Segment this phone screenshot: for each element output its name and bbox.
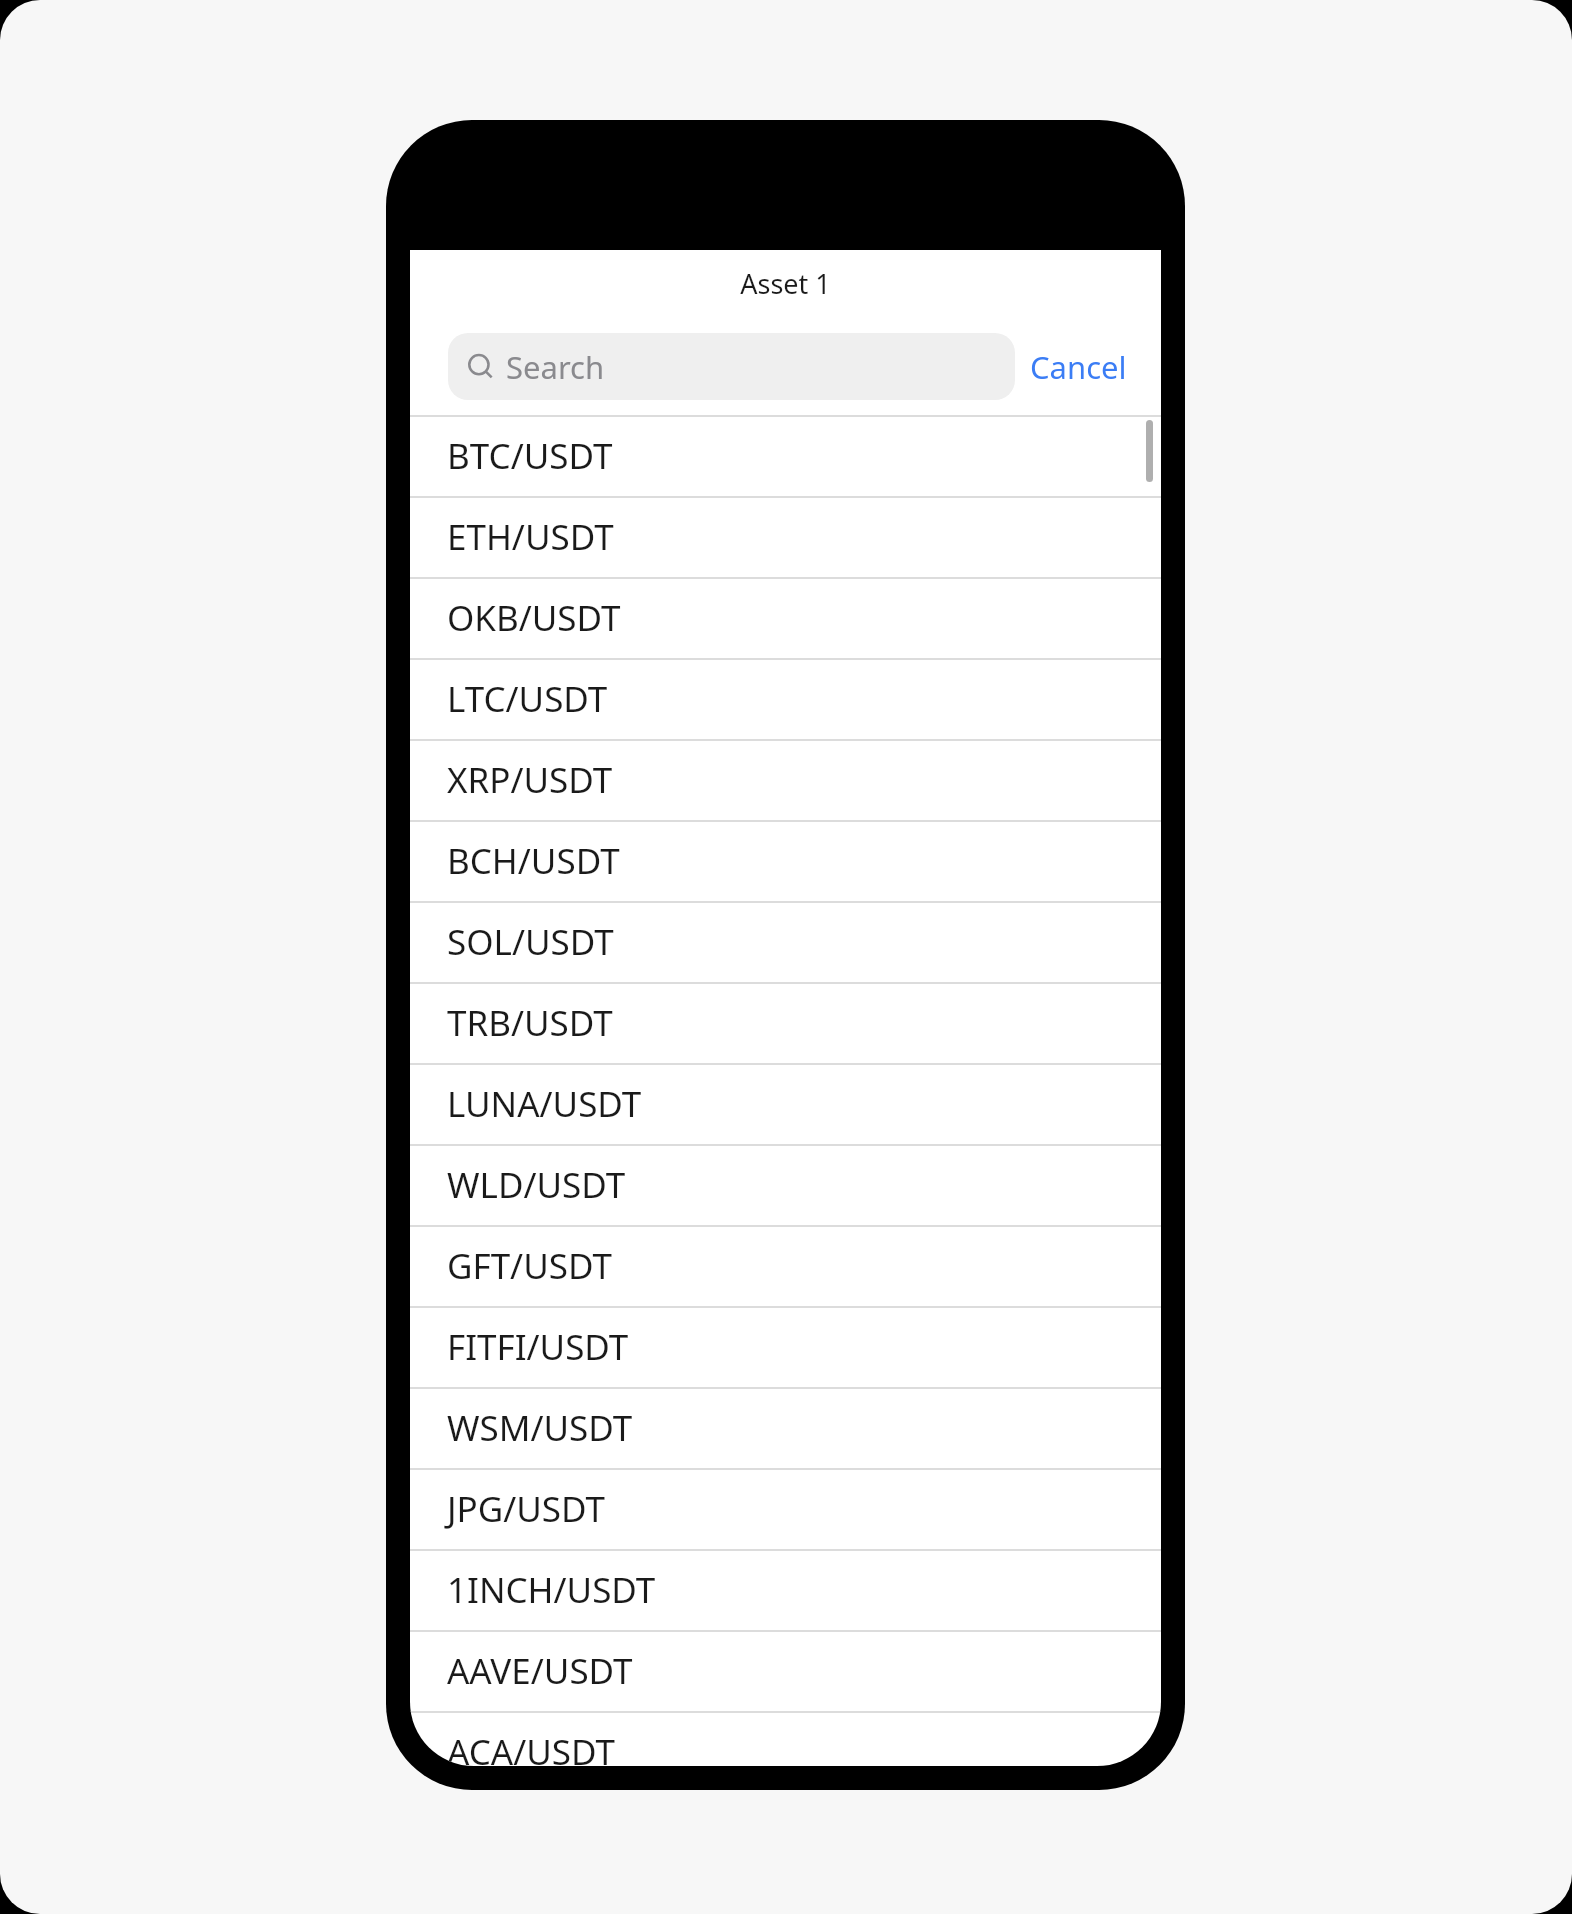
button[interactable]: WSM/USDT	[410, 1387, 1161, 1468]
staticText: Asset 1	[740, 265, 831, 302]
staticText: BCH/USDT	[447, 837, 620, 885]
staticText: LUNA/USDT	[447, 1080, 642, 1128]
staticText: OKB/USDT	[447, 594, 621, 642]
button[interactable]: 1INCH/USDT	[410, 1549, 1161, 1630]
button[interactable]: BCH/USDT	[410, 820, 1161, 901]
button[interactable]: BTC/USDT	[410, 415, 1161, 496]
button[interactable]: LUNA/USDT	[410, 1063, 1161, 1144]
staticText: Search	[506, 346, 605, 388]
staticText: XRP/USDT	[447, 756, 613, 804]
staticText: Cancel	[1030, 346, 1127, 388]
button[interactable]: XRP/USDT	[410, 739, 1161, 820]
button[interactable]: Cancel	[1015, 333, 1127, 400]
staticText: GFT/USDT	[447, 1242, 612, 1290]
staticText: FITFI/USDT	[447, 1323, 629, 1371]
staticText: 1INCH/USDT	[447, 1566, 656, 1614]
staticText: AAVE/USDT	[447, 1647, 633, 1695]
staticText: ACA/USDT	[447, 1728, 615, 1766]
button[interactable]: TRB/USDT	[410, 982, 1161, 1063]
staticText: LTC/USDT	[447, 675, 608, 723]
button[interactable]: ACA/USDT	[410, 1711, 1161, 1766]
button[interactable]: AAVE/USDT	[410, 1630, 1161, 1711]
button[interactable]: SOL/USDT	[410, 901, 1161, 982]
button[interactable]: OKB/USDT	[410, 577, 1161, 658]
button[interactable]: LTC/USDT	[410, 658, 1161, 739]
staticText: WSM/USDT	[447, 1404, 633, 1452]
button[interactable]: Search	[448, 333, 1015, 400]
staticText: TRB/USDT	[447, 999, 613, 1047]
staticText: JPG/USDT	[447, 1485, 605, 1533]
button[interactable]: JPG/USDT	[410, 1468, 1161, 1549]
button[interactable]: GFT/USDT	[410, 1225, 1161, 1306]
staticText: BTC/USDT	[447, 432, 613, 480]
staticText: WLD/USDT	[447, 1161, 626, 1209]
button[interactable]: WLD/USDT	[410, 1144, 1161, 1225]
staticText: SOL/USDT	[447, 918, 614, 966]
button[interactable]: FITFI/USDT	[410, 1306, 1161, 1387]
staticText: ETH/USDT	[447, 513, 614, 561]
button[interactable]: ETH/USDT	[410, 496, 1161, 577]
